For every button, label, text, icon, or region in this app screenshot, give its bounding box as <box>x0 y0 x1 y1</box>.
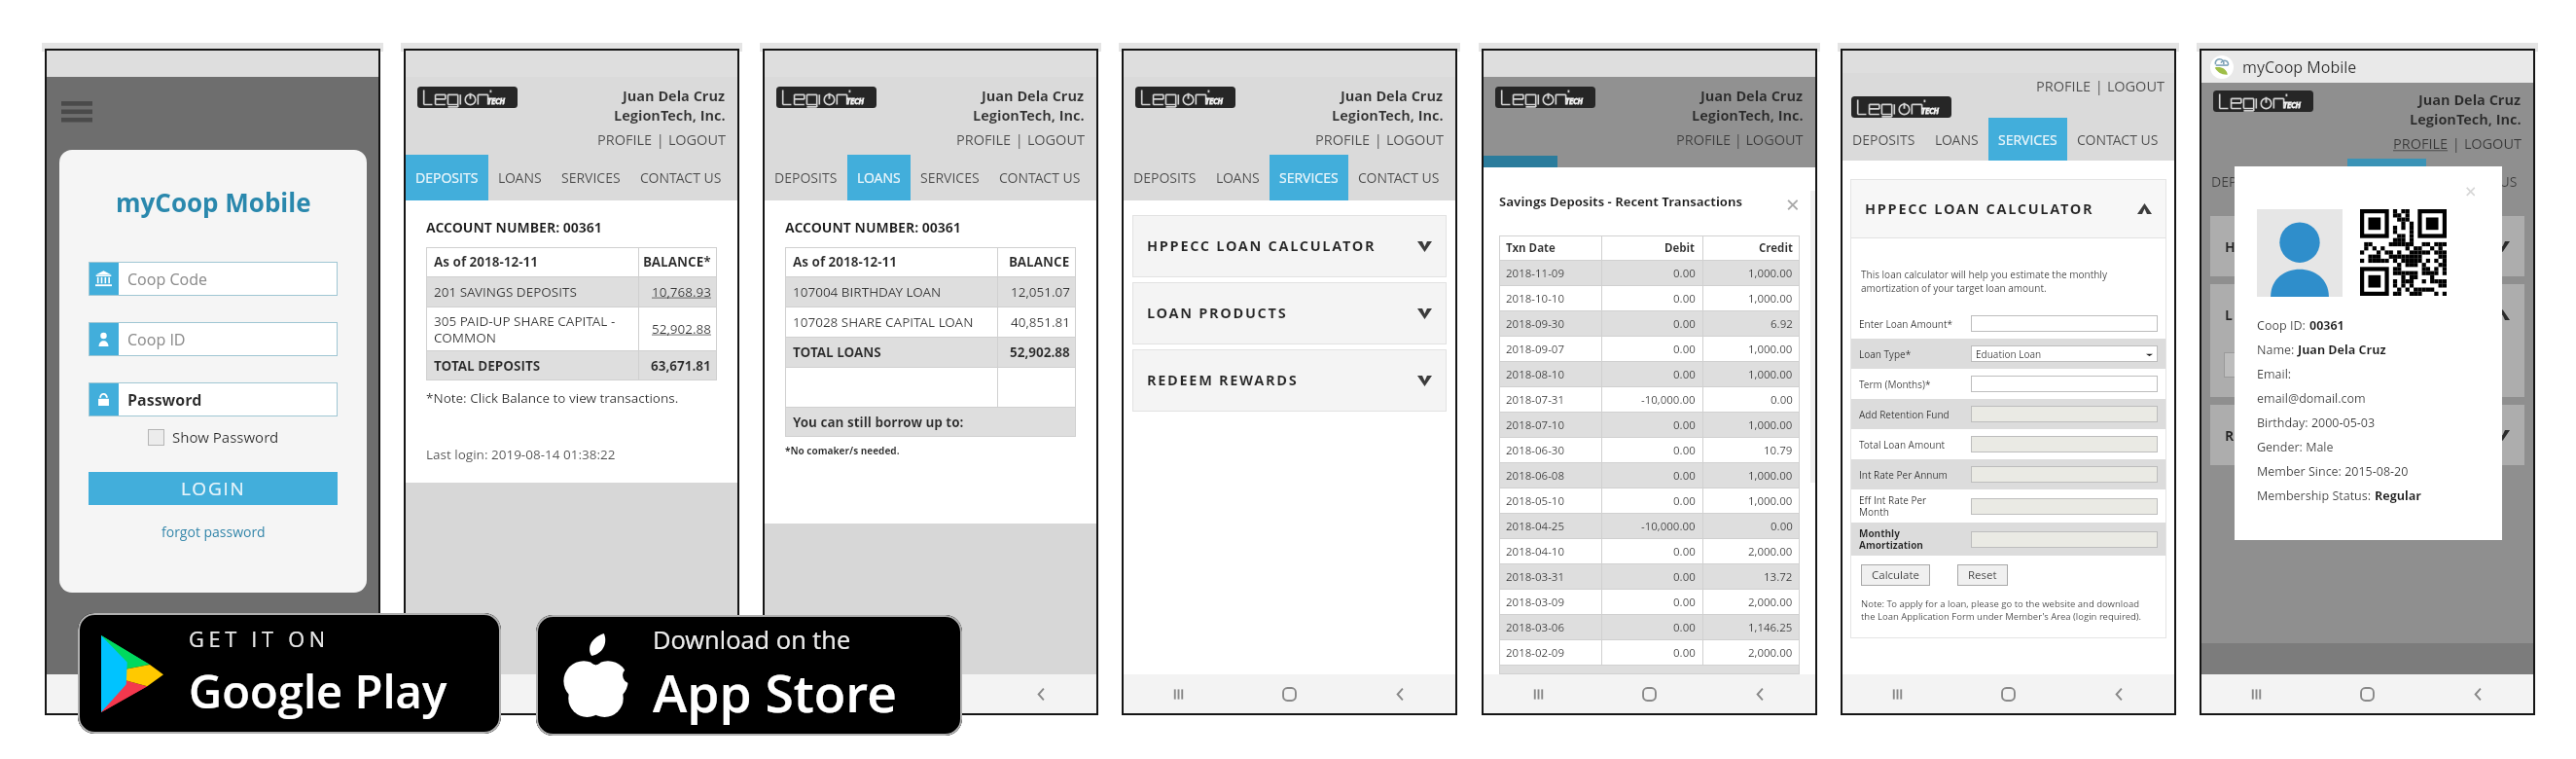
button[interactable]: Recents <box>1484 674 1593 713</box>
button[interactable]: PROFILE <box>597 130 653 150</box>
button[interactable]: Get it on Google Play <box>78 613 501 734</box>
button[interactable]: DEPOSITS <box>1843 118 1925 161</box>
button[interactable]: LOGOUT <box>2464 134 2522 154</box>
button[interactable]: LOANS <box>1206 155 1270 200</box>
staticText: 63,671.81 <box>651 357 711 375</box>
button[interactable]: Recents <box>2201 674 2311 713</box>
staticText: Term (Months)* <box>1859 378 1931 391</box>
button[interactable]: HPPECC LOAN CALCULATOR <box>2210 216 2524 276</box>
staticText: Monthly Amortization <box>1859 526 1923 552</box>
button[interactable]: SERVICES <box>2347 159 2426 204</box>
button[interactable]: Reset <box>1957 564 2008 586</box>
button[interactable] <box>1971 315 2158 332</box>
button[interactable]: Download on the App Store <box>536 615 962 736</box>
staticText: 00361 <box>2309 317 2344 334</box>
button[interactable]: Back <box>268 674 378 713</box>
button[interactable]: LOAN PRODUCTS <box>1132 282 1447 344</box>
staticText: Juan Dela Cruz <box>1341 87 1444 106</box>
button[interactable]: LOGOUT <box>668 130 726 150</box>
button[interactable]: CONTACT US <box>630 155 732 200</box>
button[interactable]: LOANS <box>2284 159 2347 204</box>
button[interactable]: SERVICES <box>911 155 989 200</box>
staticText: 1,000.00 <box>1748 266 1793 281</box>
button[interactable]: Recents <box>47 674 157 713</box>
button[interactable]: DEPOSITS <box>1124 155 1206 200</box>
button[interactable]: Recents <box>1124 674 1234 713</box>
staticText: Member Since: 2015-08-20 <box>2257 463 2409 480</box>
button[interactable]: Recents <box>765 674 875 713</box>
button[interactable]: LOANS <box>1925 118 1988 161</box>
button[interactable]: DEPOSITS <box>2201 159 2284 204</box>
button[interactable]: Recents <box>406 674 516 713</box>
button[interactable]: Coop Code <box>89 262 338 296</box>
button[interactable] <box>1971 498 2158 515</box>
button[interactable]: Home <box>1593 674 1704 713</box>
button[interactable]: PROFILE <box>956 130 1012 150</box>
button[interactable]: Close <box>1786 193 1800 225</box>
button[interactable]: Back <box>2063 674 2174 713</box>
button[interactable]: Back <box>1344 674 1455 713</box>
staticText: HPPECC LOAN CALCULATOR <box>1865 199 2094 219</box>
button[interactable]: LOGOUT <box>1386 130 1444 150</box>
staticText: 0.00 <box>1673 417 1696 433</box>
staticText: LegionTech, Inc. <box>1692 106 1804 126</box>
button[interactable]: LOGOUT <box>1027 130 1085 150</box>
button[interactable] <box>1971 406 2158 422</box>
button[interactable]: CONTACT US <box>2426 159 2527 204</box>
staticText: BALANCE* <box>643 253 711 271</box>
button[interactable]: REDEEM REWARDS <box>1132 349 1447 412</box>
button[interactable]: CONTACT US <box>989 155 1091 200</box>
button[interactable]: PROFILE <box>1315 130 1371 150</box>
staticText: Reset <box>1968 567 1997 583</box>
button[interactable]: Home <box>1952 674 2063 713</box>
button[interactable]: HPPECC LOAN CALCULATOR <box>1132 215 1447 277</box>
button[interactable]: Menu <box>61 101 92 125</box>
button[interactable]: Back <box>2422 674 2533 713</box>
button[interactable] <box>1971 466 2158 483</box>
button[interactable]: LOAN PRODUCTS <box>2210 284 2524 344</box>
staticText: Add Retention Fund <box>1859 408 1950 421</box>
button[interactable]: Home <box>157 674 268 713</box>
button[interactable]: Recents <box>1843 674 1952 713</box>
staticText: TECH <box>1921 106 1939 117</box>
button[interactable]: Back <box>626 674 737 713</box>
button[interactable]: DEPOSITS <box>406 155 488 200</box>
button[interactable] <box>1971 376 2158 392</box>
button[interactable]: Back <box>1704 674 1815 713</box>
staticText: This loan calculator will help you estim… <box>1861 268 2156 295</box>
button[interactable]: Calculate <box>1861 564 1930 586</box>
button[interactable] <box>1971 531 2158 548</box>
button[interactable]: Eduation Loan <box>1971 345 2158 362</box>
button[interactable]: CONTACT US <box>1348 155 1449 200</box>
button[interactable]: LOGIN <box>89 472 338 505</box>
button[interactable]: Password <box>89 382 338 416</box>
button[interactable]: REDEEM REWARDS <box>2210 405 2524 465</box>
button[interactable]: SERVICES <box>1270 155 1348 200</box>
button[interactable]: Home <box>2311 674 2422 713</box>
button[interactable]: LOGOUT <box>2107 77 2165 96</box>
button[interactable]: PROFILE <box>2393 134 2449 154</box>
button[interactable]: LOANS <box>488 155 552 200</box>
button[interactable]: CONTACT US <box>2067 118 2168 161</box>
button[interactable]: PROFILE <box>2036 77 2092 96</box>
button[interactable]: Show Password <box>145 424 282 450</box>
button[interactable]: Coop ID <box>89 322 338 356</box>
staticText: LOGOUT <box>2107 77 2165 96</box>
button[interactable]: HPPECC LOAN CALCULATOR <box>1850 179 2166 238</box>
button[interactable] <box>1971 436 2158 452</box>
button[interactable]: Home <box>516 674 626 713</box>
button[interactable]: PROFILE | LOGOUT <box>1676 130 1804 150</box>
button[interactable]: Close <box>2465 178 2480 204</box>
button[interactable]: LOANS <box>847 155 911 200</box>
button[interactable]: SERVICES <box>552 155 630 200</box>
staticText: 10.79 <box>1764 443 1793 458</box>
button[interactable]: Home <box>1234 674 1344 713</box>
staticText: LOANS <box>857 168 901 187</box>
button[interactable]: DEPOSITS <box>765 155 847 200</box>
staticText: 2018-04-10 <box>1506 544 1565 560</box>
button[interactable]: forgot password <box>160 521 268 543</box>
staticText: TECH <box>1205 96 1223 107</box>
button[interactable]: SERVICES <box>1988 118 2067 161</box>
button[interactable]: Home <box>875 674 985 713</box>
button[interactable]: Back <box>985 674 1096 713</box>
